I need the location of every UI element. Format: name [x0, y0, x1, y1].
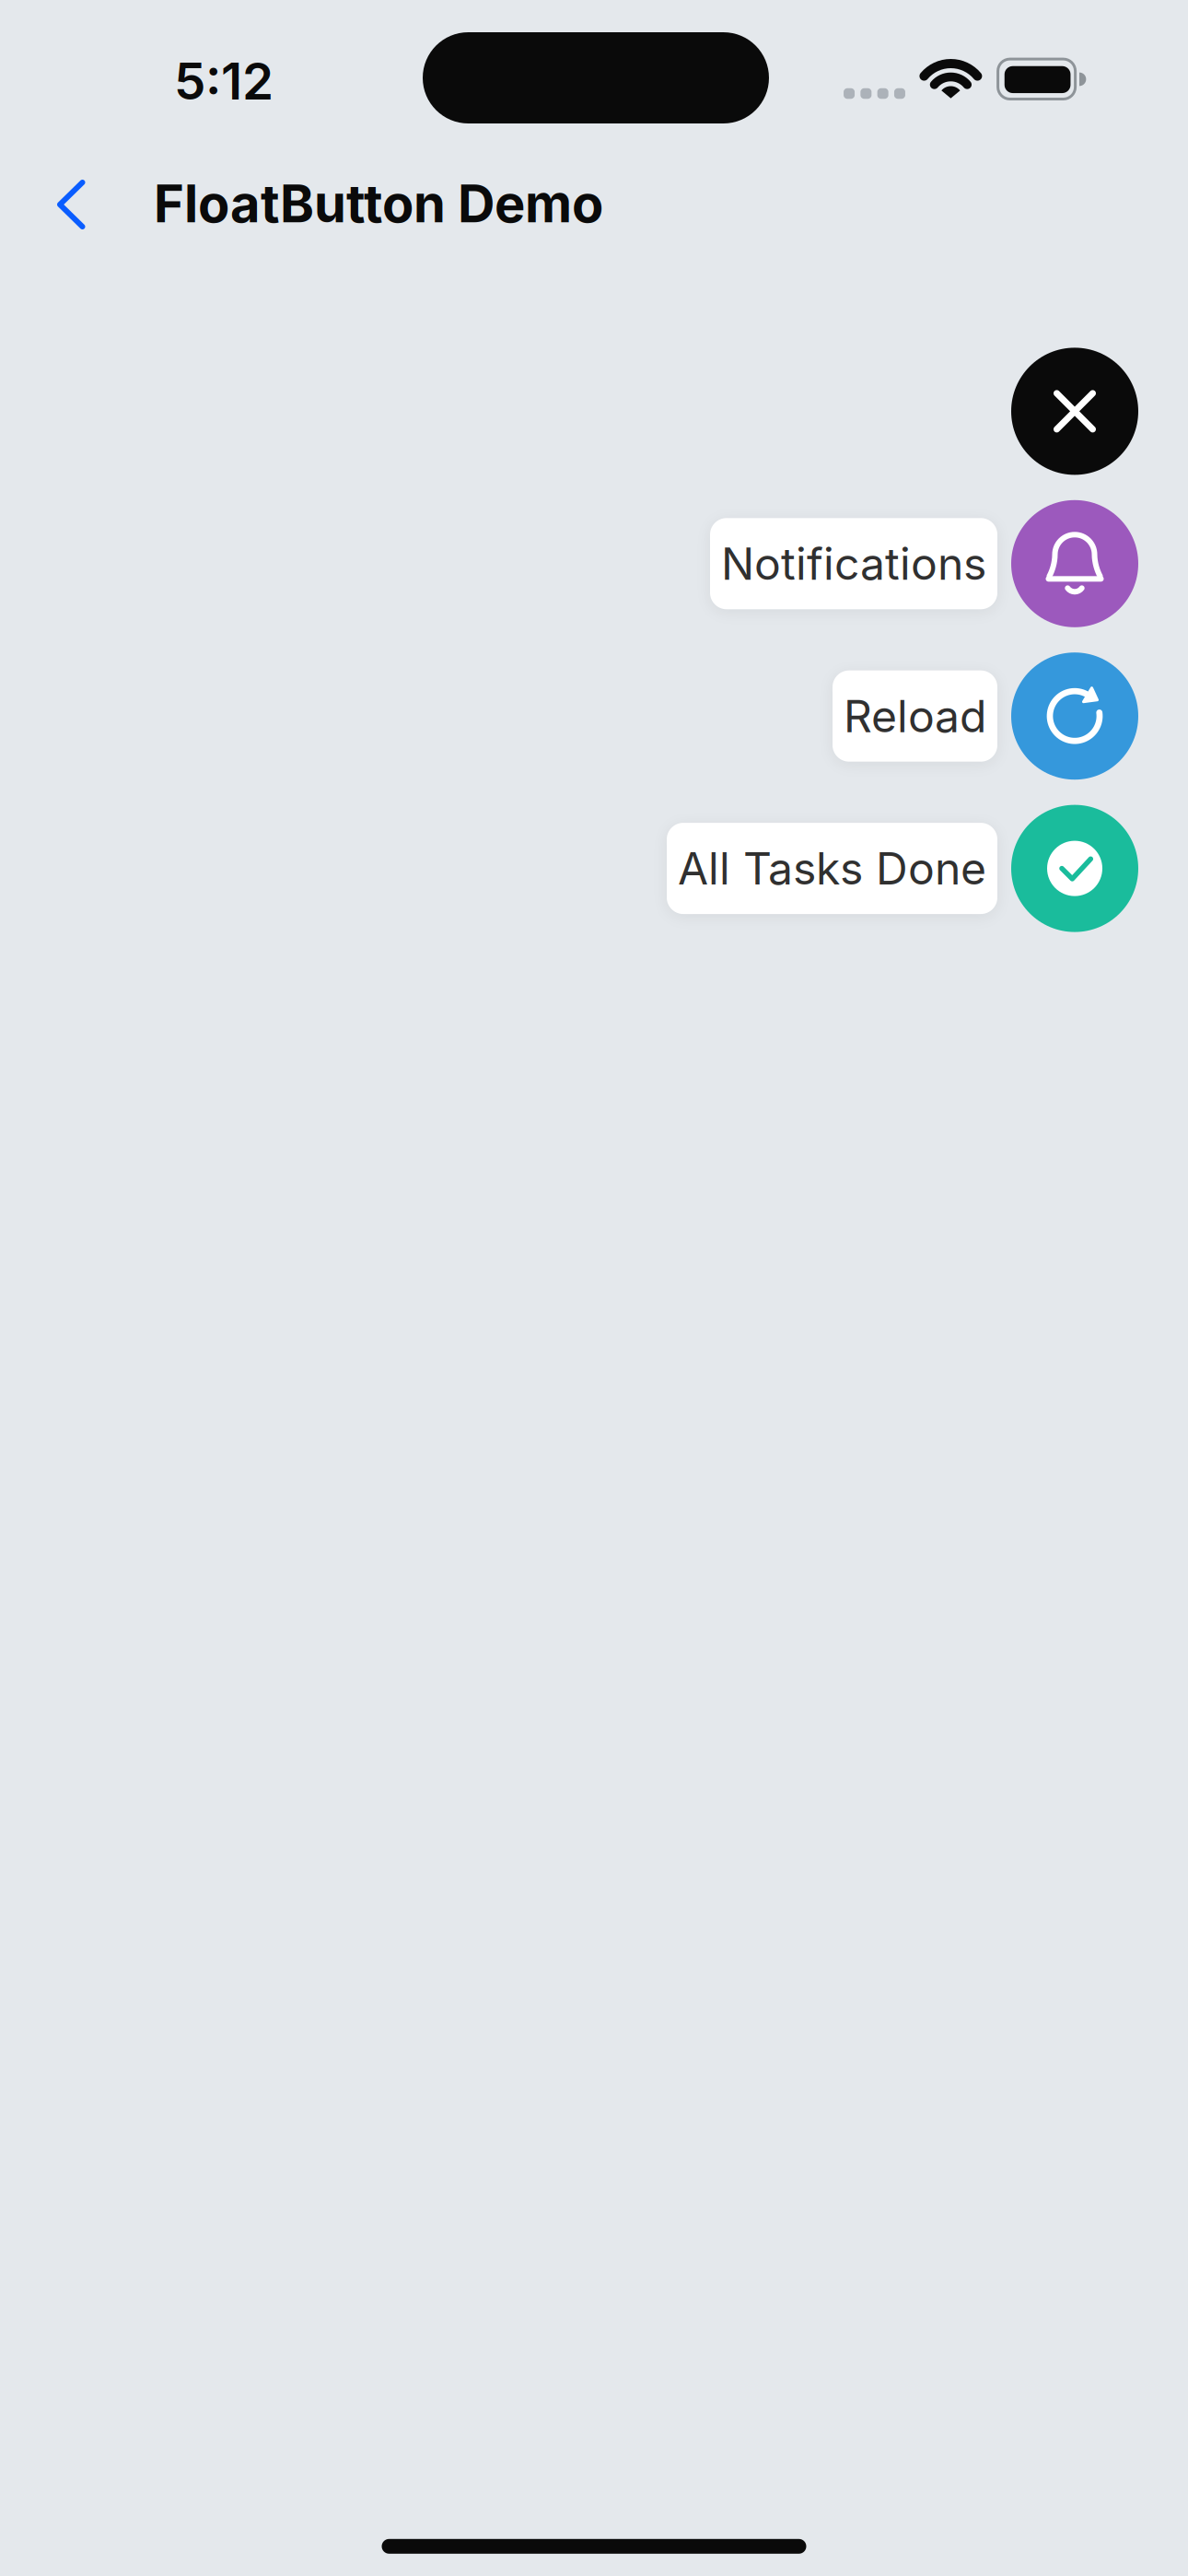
button[interactable]: All Tasks Done	[667, 805, 1138, 932]
button[interactable]	[47, 169, 95, 240]
staticText: Reload	[844, 690, 986, 742]
button[interactable]	[1011, 348, 1138, 475]
button[interactable]: Reload	[833, 652, 1138, 780]
staticText: Notifications	[721, 538, 986, 590]
button[interactable]: Notifications	[710, 500, 1138, 627]
staticText: FloatButton Demo	[154, 173, 603, 234]
staticText: 5:12	[174, 51, 274, 111]
staticText: All Tasks Done	[678, 842, 986, 895]
